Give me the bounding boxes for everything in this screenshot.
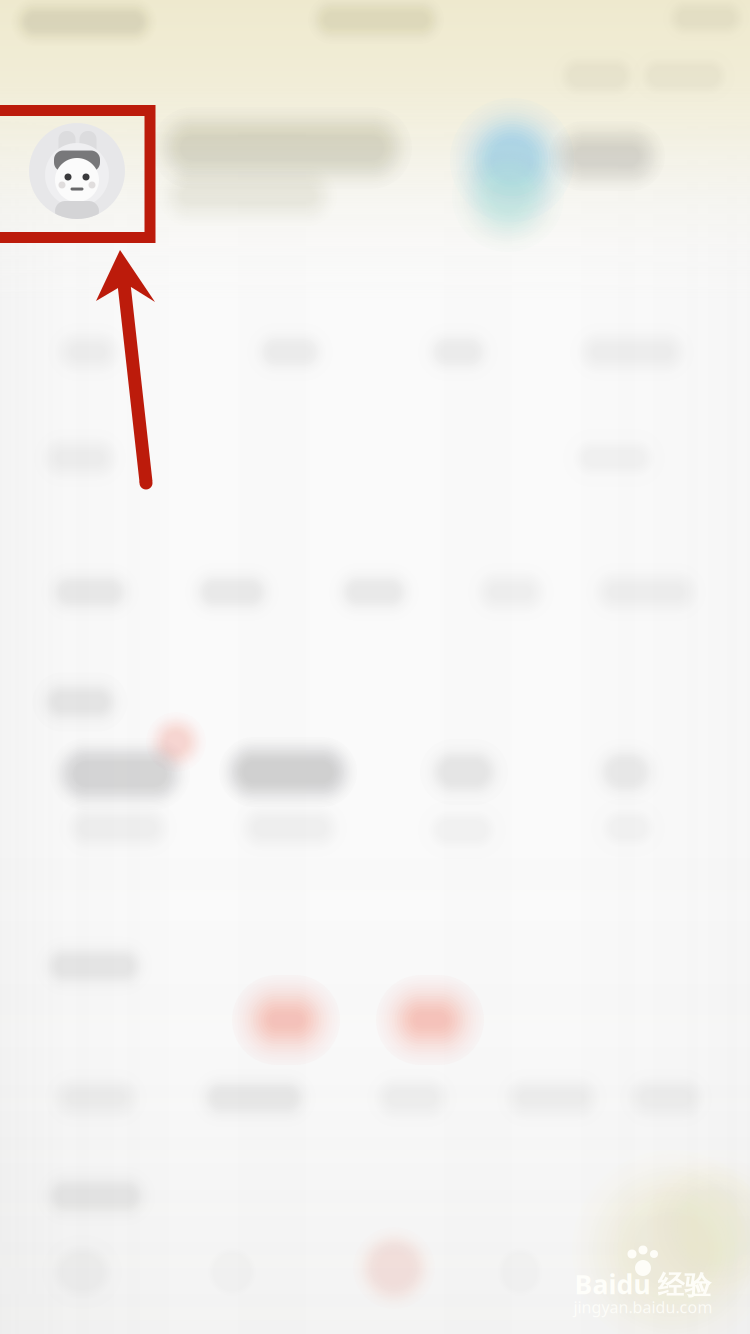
staticText: jingyan.baidu.com: [573, 1296, 712, 1318]
staticText: Baidu 经验: [574, 1266, 711, 1302]
